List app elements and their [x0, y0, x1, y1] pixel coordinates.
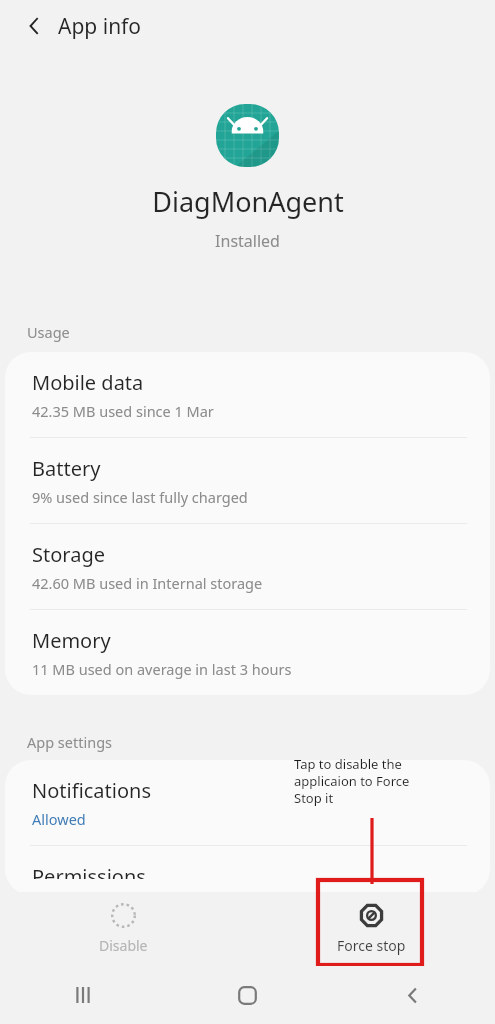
button[interactable]: Memory [5, 610, 490, 695]
staticText: Allowed [32, 809, 86, 829]
button[interactable]: Storage [5, 524, 490, 609]
button[interactable]: Recents [0, 966, 165, 1024]
button[interactable]: Force stop [247, 892, 495, 966]
staticText: Mobile data [32, 369, 144, 396]
staticText: App settings [27, 732, 113, 752]
staticText: Notifications [32, 777, 151, 804]
staticText: Force stop [337, 936, 406, 955]
staticText: 11 MB used on average in last 3 hours [32, 659, 292, 679]
button[interactable]: Disable [0, 892, 247, 966]
button[interactable]: Permissions [5, 846, 490, 895]
staticText: DiagMonAgent [152, 183, 344, 220]
button[interactable]: Back [330, 966, 495, 1024]
staticText: App info [58, 12, 142, 41]
staticText: Disable [99, 936, 148, 955]
staticText: Permissions [32, 863, 146, 879]
staticText: Memory [32, 627, 111, 654]
staticText: 9% used since last fully charged [32, 487, 248, 507]
staticText: Storage [32, 541, 105, 568]
button[interactable]: Mobile data [5, 352, 490, 437]
button[interactable]: Back [14, 6, 54, 46]
staticText: Tap to disable the applicaion to Force S… [294, 755, 410, 807]
button[interactable]: Notifications [5, 760, 490, 845]
staticText: 42.35 MB used since 1 Mar [32, 401, 214, 421]
staticText: Battery [32, 455, 101, 482]
button[interactable]: Home [165, 966, 330, 1024]
button[interactable]: Battery [5, 438, 490, 523]
staticText: Usage [27, 322, 70, 342]
staticText: Installed [215, 230, 280, 252]
staticText: 42.60 MB used in Internal storage [32, 573, 263, 593]
